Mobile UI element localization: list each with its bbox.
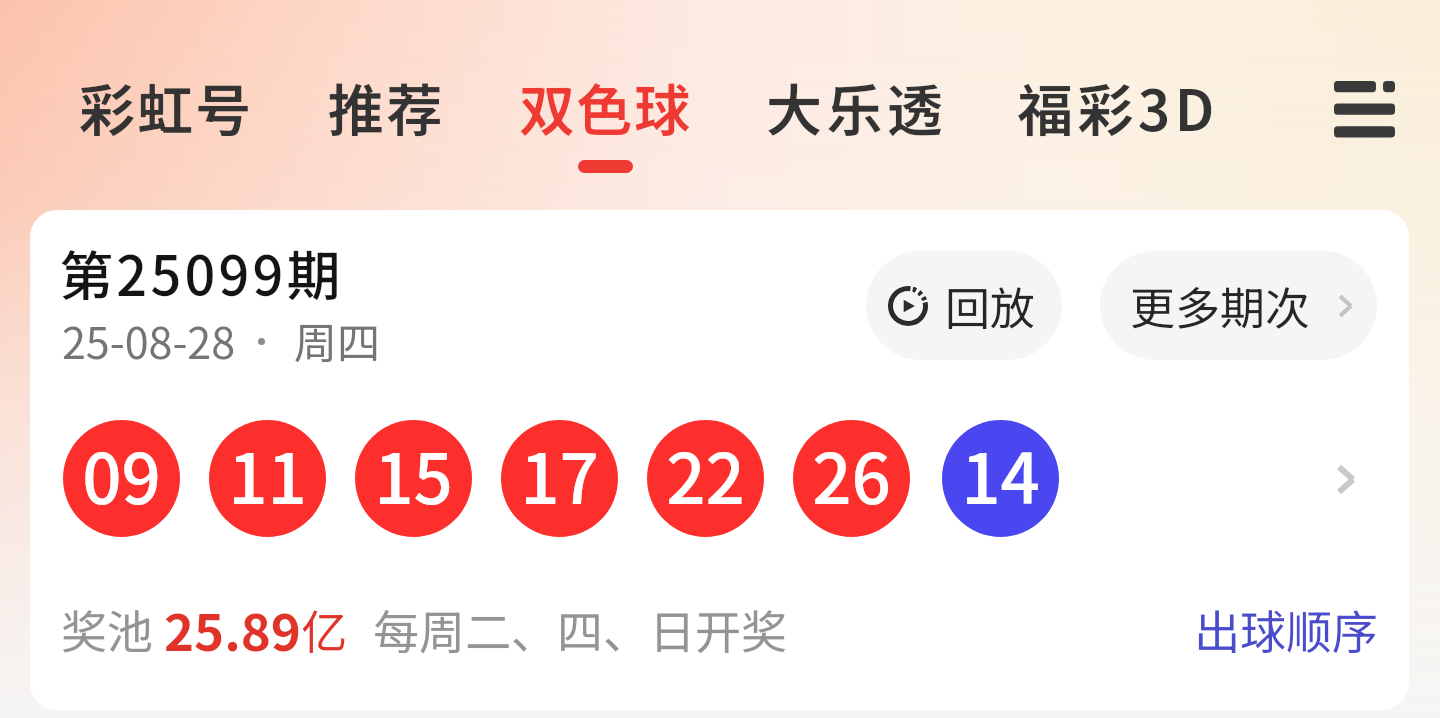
button[interactable]: 福彩3D	[1014, 66, 1222, 147]
staticText: 26	[812, 424, 891, 524]
button[interactable]: 出球顺序	[1194, 596, 1378, 663]
staticText: 大乐透	[766, 66, 948, 147]
staticText: 09	[82, 424, 161, 524]
button[interactable]: 回放	[866, 251, 1062, 360]
button[interactable]: 双色球	[516, 66, 695, 173]
staticText: 双色球	[519, 66, 692, 147]
staticText: 第25099期	[59, 233, 344, 311]
button[interactable]: 彩虹号	[76, 66, 257, 147]
staticText: 每周二、四、日开奖	[373, 596, 787, 663]
staticText: 11	[228, 424, 307, 524]
staticText: 推荐	[328, 66, 446, 147]
staticText: 14	[961, 424, 1040, 524]
staticText: 25-08-28	[62, 309, 236, 371]
staticText: 25.89	[164, 592, 301, 666]
staticText: 17	[520, 424, 599, 524]
staticText: 更多期次	[1130, 273, 1311, 338]
button[interactable]: 推荐	[325, 66, 449, 147]
button[interactable]: 大乐透	[763, 66, 951, 147]
button[interactable]: 更多期次	[1100, 251, 1377, 360]
staticText: 出球顺序	[1194, 596, 1378, 663]
staticText: 15	[374, 424, 453, 524]
staticText: 亿	[301, 596, 347, 663]
staticText: 福彩3D	[1017, 66, 1219, 147]
button[interactable]: Menu	[1321, 71, 1407, 147]
staticText: 周四	[294, 309, 380, 371]
staticText: 彩虹号	[79, 66, 254, 147]
staticText: 22	[666, 424, 745, 524]
staticText: 回放	[945, 273, 1036, 338]
staticText: 奖池	[61, 596, 164, 663]
button[interactable]: More numbers	[1315, 448, 1377, 510]
